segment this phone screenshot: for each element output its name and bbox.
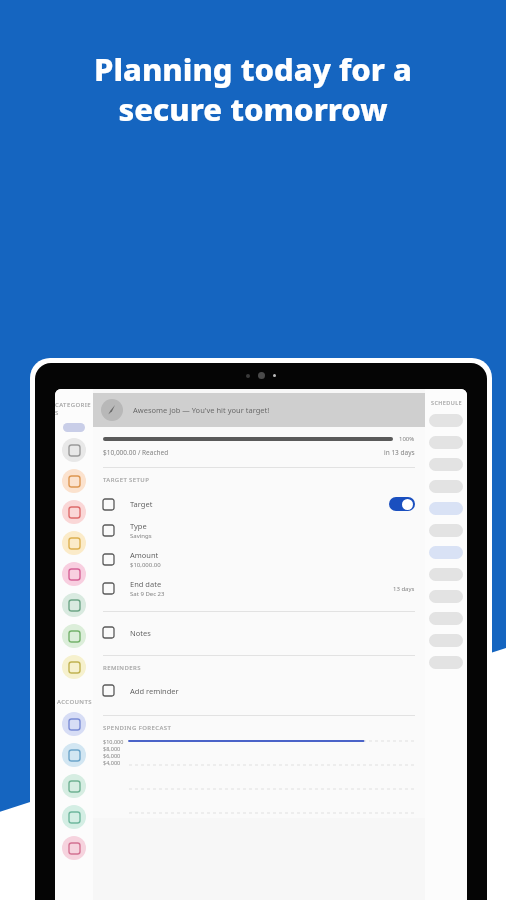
staticText: End date [130, 579, 162, 589]
button[interactable] [429, 524, 463, 537]
button[interactable]: Category 3 [62, 500, 86, 524]
staticText: $10,000.00 [130, 561, 161, 569]
button[interactable] [429, 436, 463, 449]
button[interactable]: Category 2 [62, 469, 86, 493]
button[interactable] [429, 568, 463, 581]
button[interactable]: Amount [103, 545, 415, 574]
button[interactable] [429, 590, 463, 603]
staticText: $6,000 [103, 752, 121, 759]
button[interactable] [429, 546, 463, 559]
button[interactable]: Category 1 [62, 438, 86, 462]
button[interactable] [429, 634, 463, 647]
button[interactable]: Type [103, 516, 415, 545]
button[interactable]: Account 4 [62, 805, 86, 829]
staticText: Amount [130, 550, 159, 560]
button[interactable]: Account 2 [62, 743, 86, 767]
staticText: Type [130, 521, 147, 531]
button[interactable]: Account 5 [62, 836, 86, 860]
button[interactable]: Category 8 [62, 655, 86, 679]
staticText: Sat 9 Dec 23 [130, 590, 165, 598]
staticText: SCHEDULE [431, 399, 462, 406]
button[interactable]: Category 7 [62, 624, 86, 648]
button[interactable]: Account 1 [62, 712, 86, 736]
button[interactable] [429, 458, 463, 471]
button[interactable]: Target [103, 492, 415, 516]
button[interactable] [429, 656, 463, 669]
button[interactable]: Awesome job — You've hit your target! [93, 393, 425, 427]
button[interactable] [429, 502, 463, 515]
staticText: in 13 days [384, 448, 415, 457]
staticText: TARGET SETUP [103, 476, 150, 484]
staticText: $8,000 [103, 745, 121, 752]
button[interactable] [429, 414, 463, 427]
staticText: $4,000 [103, 759, 121, 766]
staticText: CATEGORIES [55, 401, 93, 417]
button[interactable]: Category 4 [62, 531, 86, 555]
staticText: Awesome job — You've hit your target! [133, 405, 270, 415]
staticText: Savings [130, 532, 152, 540]
staticText: Planning today for a secure tomorrow [94, 48, 412, 130]
staticText: 13 days [393, 585, 415, 593]
staticText: ACCOUNTS [57, 698, 92, 706]
button[interactable]: Add reminder [103, 680, 415, 701]
button[interactable]: Category 6 [62, 593, 86, 617]
staticText: Target [130, 499, 153, 509]
staticText: SPENDING FORECAST [103, 724, 172, 732]
button[interactable]: Notes [103, 622, 415, 643]
staticText: REMINDERS [103, 664, 141, 672]
button[interactable]: Account 3 [62, 774, 86, 798]
staticText: 100% [399, 435, 415, 443]
staticText: $10,000.00 / Reached [103, 448, 169, 457]
button[interactable]: Category 5 [62, 562, 86, 586]
staticText: Notes [130, 628, 151, 638]
staticText: Add reminder [130, 686, 179, 696]
button[interactable]: End date [103, 574, 415, 603]
staticText: $10,000 [103, 738, 124, 745]
button[interactable] [429, 480, 463, 493]
button[interactable] [429, 612, 463, 625]
